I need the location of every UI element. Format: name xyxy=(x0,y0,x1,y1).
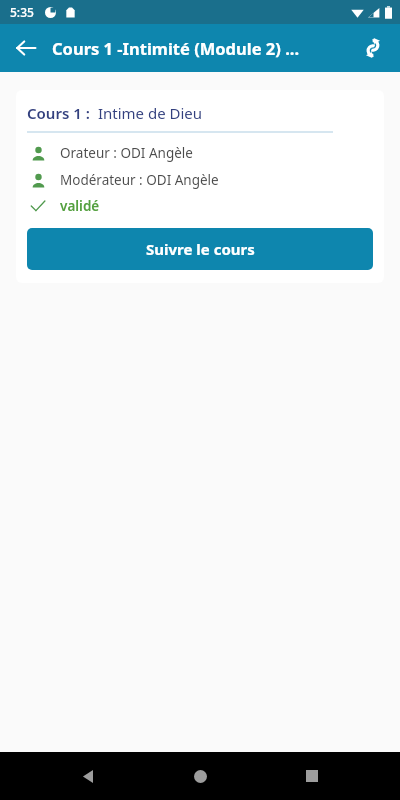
button[interactable]: Recent apps xyxy=(288,752,336,800)
staticText: Intime de Dieu xyxy=(94,103,203,123)
button[interactable]: Retour xyxy=(6,28,46,68)
staticText: Cours 1 : xyxy=(27,103,94,123)
button[interactable]: Back xyxy=(64,752,112,800)
staticText: Modérateur : ODI Angèle xyxy=(60,171,219,189)
staticText: Orateur : ODI Angèle xyxy=(60,144,193,162)
button[interactable]: Synchroniser xyxy=(353,28,393,68)
button[interactable]: Suivre le cours xyxy=(27,228,373,270)
staticText: 5:35 xyxy=(10,4,34,20)
staticText: Cours 1 -Intimité (Module 2) ... xyxy=(52,37,353,59)
button[interactable]: Home xyxy=(176,752,224,800)
staticText: Suivre le cours xyxy=(146,239,255,259)
staticText: validé xyxy=(60,197,100,215)
